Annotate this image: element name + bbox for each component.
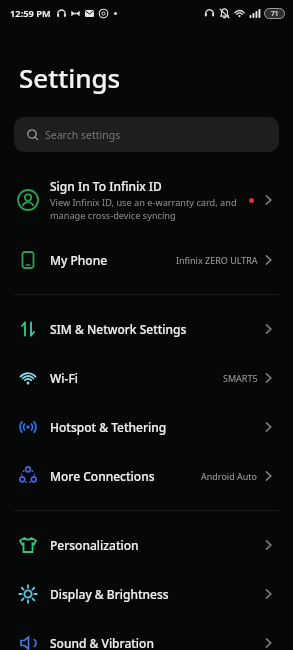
staticText: More Connections (50, 468, 155, 484)
button[interactable]: Search settings (14, 117, 279, 152)
staticText: Android Auto (201, 470, 258, 482)
staticText: 71 (271, 9, 279, 18)
staticText: Settings (19, 60, 121, 95)
button[interactable]: SIM & Network Settings (0, 304, 293, 353)
button[interactable]: Display & Brightness (0, 569, 293, 618)
button[interactable]: Wi-Fi (0, 353, 293, 402)
staticText: Sign In To Infinix ID (50, 178, 162, 194)
staticText: Wi-Fi (50, 370, 78, 386)
staticText: 12:59 PM (10, 7, 51, 20)
staticText: My Phone (50, 252, 108, 268)
button[interactable]: Sound & Vibration (0, 618, 293, 650)
staticText: Sound & Vibration (50, 635, 154, 650)
staticText: SMART5 (223, 372, 258, 384)
staticText: SIM & Network Settings (50, 321, 187, 337)
button[interactable]: My Phone (0, 235, 293, 284)
staticText: Personalization (50, 537, 139, 553)
staticText: View Infinix ID, use an e-warranty card,… (50, 196, 237, 222)
staticText: Display & Brightness (50, 586, 169, 602)
button[interactable]: More Connections (0, 451, 293, 500)
button[interactable]: Sign In To Infinix ID (0, 165, 293, 235)
button[interactable]: Hotspot & Tethering (0, 402, 293, 451)
staticText: Infinix ZERO ULTRA (176, 254, 258, 266)
staticText: Hotspot & Tethering (50, 419, 167, 435)
button[interactable]: Personalization (0, 520, 293, 569)
staticText: Search settings (45, 128, 121, 142)
